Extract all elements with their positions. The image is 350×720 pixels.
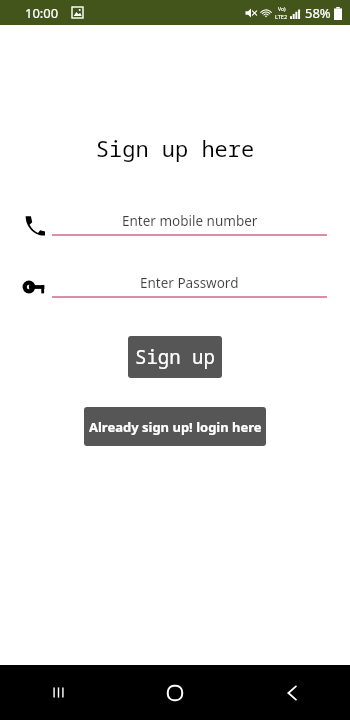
staticText: 58% — [305, 4, 331, 22]
staticText: Sign up here — [0, 133, 350, 163]
button[interactable]: Password — [0, 270, 350, 310]
other: Mobile number — [23, 214, 45, 236]
button[interactable]: Sign up — [128, 336, 222, 378]
button[interactable]: Home — [116, 665, 233, 720]
other: Password — [23, 276, 45, 298]
staticText: Vo) — [278, 6, 286, 13]
staticText: Sign up — [135, 344, 215, 370]
staticText: LTE2 — [275, 13, 288, 20]
button[interactable]: Mobile number — [0, 208, 350, 248]
button[interactable]: Already sign up! login here — [84, 407, 266, 446]
button[interactable]: Recent apps — [0, 665, 116, 720]
staticText: Already sign up! login here — [89, 418, 262, 436]
staticText: Enter Password — [140, 274, 239, 292]
staticText: 10:00 — [25, 4, 59, 22]
button[interactable]: Back — [233, 665, 350, 720]
staticText: Enter mobile number — [122, 212, 258, 230]
